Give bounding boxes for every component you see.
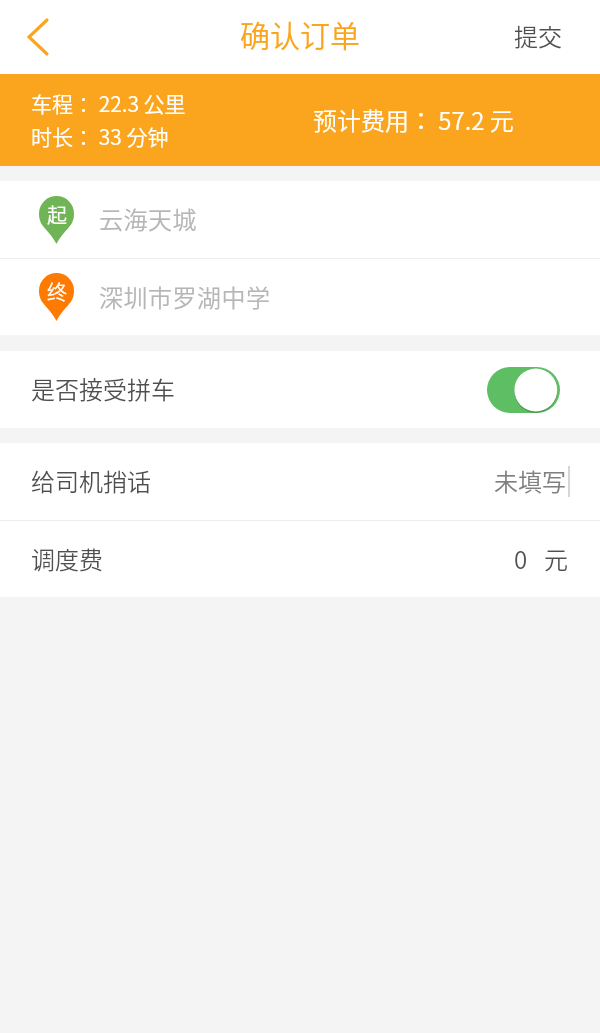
- staticText: 0: [514, 541, 528, 576]
- staticText: 车程： 22.3 公里: [31, 88, 186, 118]
- staticText: 给司机捎话: [31, 463, 151, 498]
- button[interactable]: Accept carpool: [487, 367, 560, 413]
- staticText: 提交: [514, 18, 562, 53]
- button[interactable]: 是否接受拼车: [0, 351, 600, 428]
- staticText: 深圳市罗湖中学: [99, 279, 271, 314]
- staticText: 未填写: [494, 463, 566, 498]
- button[interactable]: 提交: [494, 8, 600, 67]
- staticText: 确认订单: [240, 12, 360, 55]
- staticText: 终: [47, 277, 67, 306]
- button[interactable]: 终: [0, 259, 600, 335]
- button[interactable]: 调度费: [0, 521, 600, 597]
- staticText: 是否接受拼车: [31, 371, 175, 406]
- button[interactable]: Back: [0, 0, 74, 74]
- button[interactable]: 给司机捎话: [0, 443, 600, 520]
- staticText: 起: [47, 200, 67, 229]
- staticText: 时长： 33 分钟: [31, 121, 169, 151]
- staticText: 预计费用： 57.2 元: [313, 102, 514, 137]
- staticText: 调度费: [31, 541, 103, 576]
- staticText: 云海天城: [99, 201, 197, 236]
- staticText: 元: [544, 541, 568, 576]
- button[interactable]: 起: [0, 181, 600, 258]
